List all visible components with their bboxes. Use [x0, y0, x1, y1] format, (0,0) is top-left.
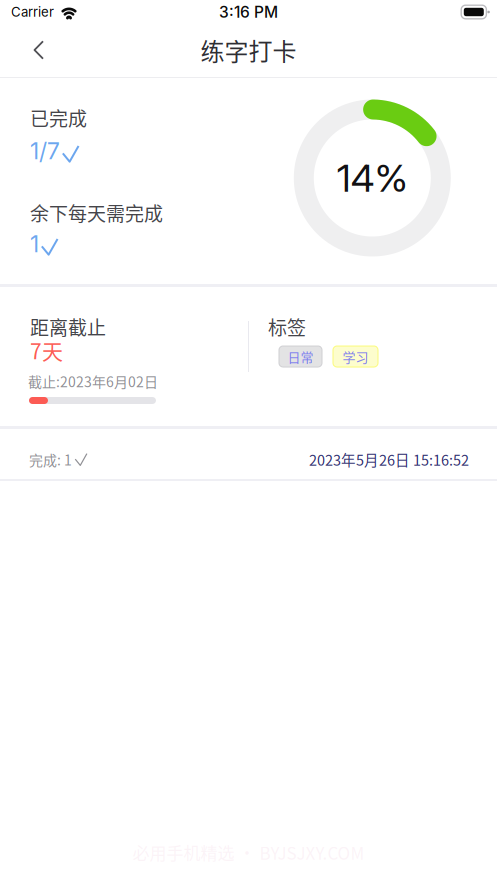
staticText: 截止:2023年6月02日: [28, 371, 158, 391]
button[interactable]: Back: [0, 28, 61, 72]
staticText: 练字打卡: [200, 33, 296, 67]
staticText: 3:16 PM: [219, 3, 278, 21]
staticText: 距离截止: [30, 313, 106, 340]
staticText: 标签: [268, 313, 306, 340]
staticText: 1: [30, 230, 39, 258]
staticText: 完成: 1: [29, 449, 72, 470]
button[interactable]: 学习: [333, 346, 378, 367]
staticText: 必用手机精选 • BYJSJXY.COM: [132, 840, 364, 865]
staticText: Carrier: [11, 4, 54, 20]
staticText: 1/7: [30, 137, 60, 165]
button[interactable]: 日常: [279, 346, 322, 367]
staticText: 已完成: [30, 104, 87, 131]
staticText: 7天: [30, 335, 63, 365]
staticText: 14%: [337, 155, 408, 201]
staticText: 余下每天需完成: [30, 199, 163, 226]
staticText: 学习: [342, 347, 368, 366]
staticText: 日常: [287, 347, 313, 366]
staticText: 2023年5月26日 15:16:52: [309, 449, 469, 470]
